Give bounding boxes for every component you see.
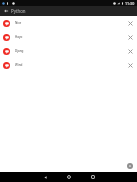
button[interactable]: Remove suggestion bbox=[126, 33, 135, 42]
button[interactable]: Remove suggestion bbox=[126, 19, 135, 28]
button[interactable]: Remove suggestion bbox=[126, 47, 135, 56]
staticText: Wind bbox=[15, 63, 126, 67]
button[interactable]: Hayo bbox=[0, 30, 137, 44]
button[interactable]: Remove suggestion bbox=[126, 61, 135, 70]
staticText: Hayo bbox=[15, 35, 126, 39]
staticText: Python bbox=[11, 8, 26, 14]
button[interactable]: Back bbox=[40, 172, 50, 182]
button[interactable]: Djang bbox=[0, 44, 137, 58]
staticText: Nice bbox=[15, 21, 126, 25]
button[interactable]: Recent apps bbox=[88, 172, 98, 182]
button[interactable]: Scroll to top bbox=[127, 163, 133, 169]
button[interactable]: Home bbox=[64, 172, 74, 182]
button[interactable]: Nice bbox=[0, 16, 137, 30]
button[interactable]: Wind bbox=[0, 58, 137, 72]
button[interactable]: Navigate up bbox=[2, 7, 10, 15]
staticText: Djang bbox=[15, 49, 126, 53]
staticText: 11:30 bbox=[125, 1, 135, 6]
